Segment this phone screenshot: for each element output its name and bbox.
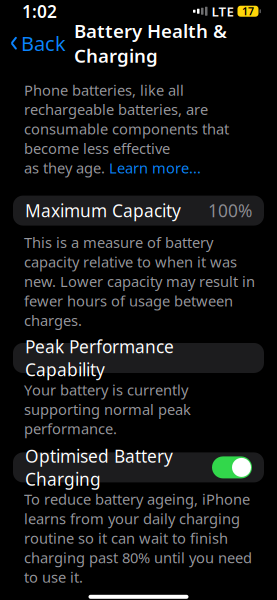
staticText: Learn more... bbox=[109, 158, 201, 178]
button[interactable]: Peak Performance Capability bbox=[13, 343, 264, 373]
staticText: This is a measure of battery capacity re… bbox=[24, 233, 255, 330]
button[interactable]: Back bbox=[0, 26, 66, 60]
staticText: To reduce battery ageing, iPhone learns … bbox=[24, 489, 252, 587]
staticText: LTE bbox=[211, 2, 233, 20]
staticText: as they age. bbox=[24, 158, 109, 178]
button[interactable]: Optimised Battery Charging bbox=[13, 452, 264, 482]
staticText: Optimised Battery Charging bbox=[25, 444, 173, 490]
staticText: Peak Performance Capability bbox=[25, 335, 174, 381]
staticText: Your battery is currently supporting nor… bbox=[24, 380, 191, 438]
staticText: 17 bbox=[242, 4, 254, 18]
button[interactable]: Optimised Battery Charging toggle, on bbox=[212, 456, 252, 478]
staticText: 100% bbox=[208, 199, 252, 222]
staticText: Back bbox=[21, 30, 66, 56]
staticText: 1:02 bbox=[22, 0, 57, 23]
button[interactable]: Learn more... bbox=[109, 158, 201, 178]
staticText: Phone batteries, like all rechargeable b… bbox=[24, 80, 229, 158]
staticText: Maximum Capacity bbox=[25, 199, 181, 222]
staticText: Battery Health & Charging bbox=[74, 18, 227, 68]
button[interactable]: Maximum Capacity bbox=[13, 196, 264, 226]
